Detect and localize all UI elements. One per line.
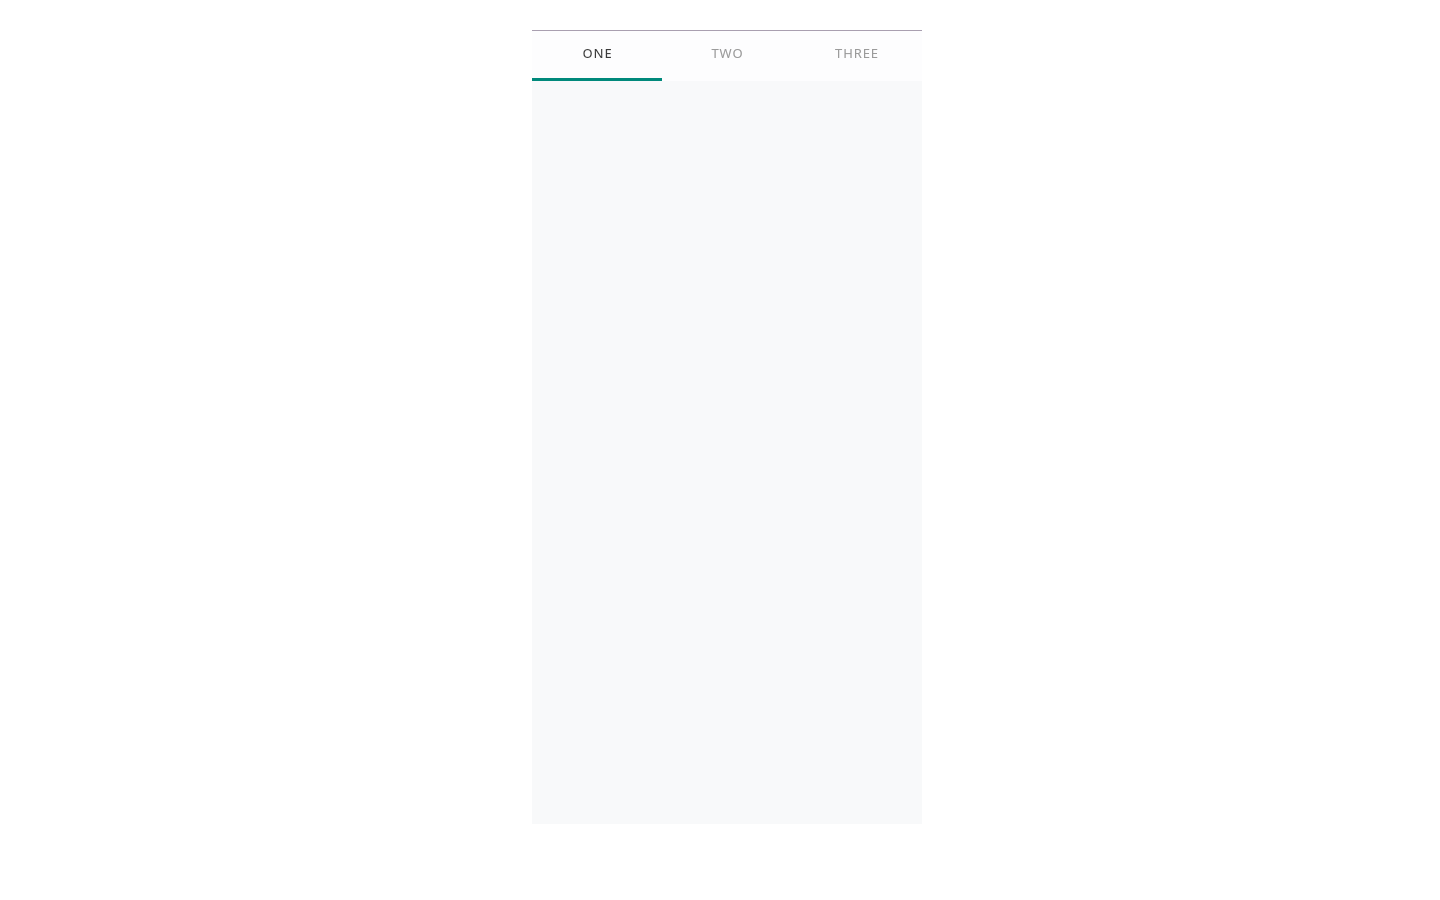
staticText: THREE xyxy=(835,44,879,62)
button[interactable]: TWO xyxy=(662,31,792,81)
staticText: ONE xyxy=(582,44,613,62)
button[interactable]: ONE xyxy=(532,31,662,81)
staticText: TWO xyxy=(711,44,744,62)
button[interactable]: THREE xyxy=(792,31,922,81)
